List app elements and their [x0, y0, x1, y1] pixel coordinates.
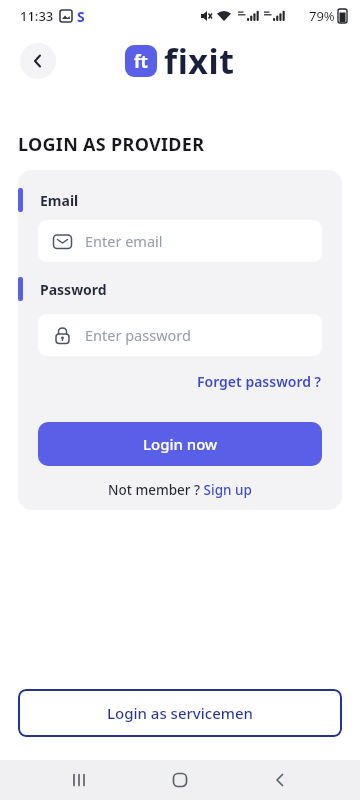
staticText: Password: [40, 280, 107, 299]
staticText: Email: [40, 191, 79, 210]
button[interactable]: [130, 760, 230, 800]
button[interactable]: Login as servicemen: [18, 689, 342, 737]
staticText: Login as servicemen: [107, 703, 253, 723]
button[interactable]: Not member ? Sign up: [108, 481, 252, 499]
button[interactable]: [20, 43, 56, 79]
button[interactable]: [230, 760, 330, 800]
button[interactable]: [30, 760, 130, 800]
staticText: 79%: [309, 7, 335, 25]
button[interactable]: Enter email: [38, 220, 322, 262]
button[interactable]: Forget password ?: [197, 372, 322, 391]
staticText: Enter password: [85, 325, 191, 345]
staticText: Enter email: [85, 231, 163, 251]
button[interactable]: Login now: [38, 422, 322, 466]
staticText: fixit: [164, 38, 235, 84]
staticText: ft: [134, 50, 148, 73]
staticText: 11:33: [20, 7, 54, 25]
staticText: LOGIN AS PROVIDER: [18, 132, 205, 157]
staticText: S: [77, 7, 85, 26]
button[interactable]: Enter password: [38, 314, 322, 356]
staticText: Login now: [143, 434, 218, 454]
